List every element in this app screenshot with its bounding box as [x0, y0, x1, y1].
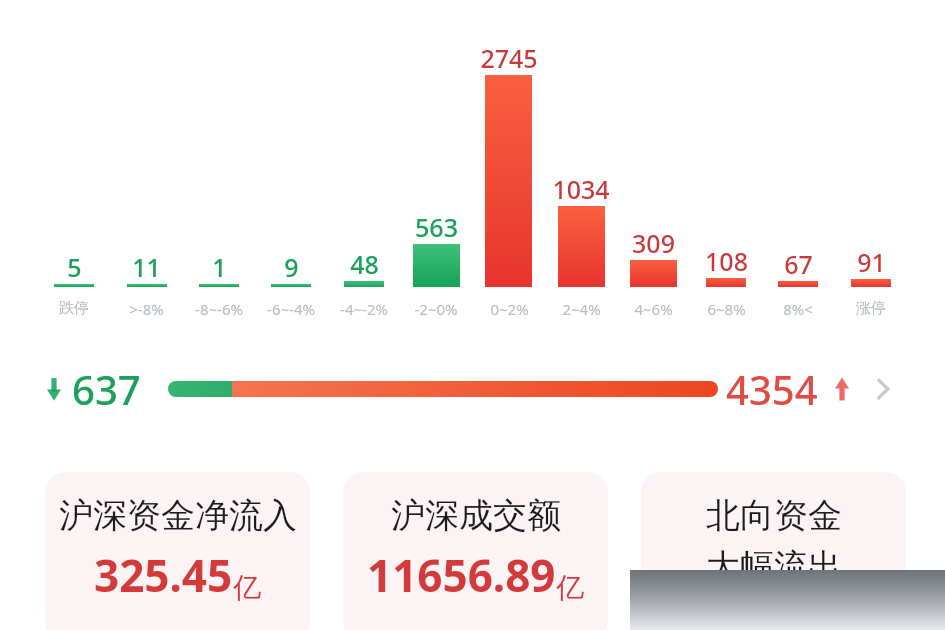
staticText: 5 — [67, 250, 82, 284]
staticText: 11 — [132, 250, 161, 284]
staticText: 67 — [784, 247, 813, 281]
staticText: 2~4% — [562, 299, 601, 319]
staticText: 2745 — [480, 41, 538, 75]
staticText: 8%< — [783, 299, 813, 319]
staticText: >-8% — [129, 299, 164, 319]
staticText: 563 — [415, 210, 458, 244]
staticText: 11656.89 — [367, 545, 556, 605]
staticText: 亿 — [556, 570, 584, 605]
staticText: 沪深资金净流入 — [59, 494, 297, 537]
staticText: 4354 — [726, 362, 818, 416]
staticText: 325.45 — [94, 545, 233, 605]
staticText: 跌停 — [59, 299, 89, 318]
staticText: 309 — [632, 226, 675, 260]
staticText: 0~2% — [490, 299, 529, 319]
button[interactable]: 沪深资金净流入 — [45, 472, 310, 630]
button[interactable]: 北向资金 — [641, 472, 906, 630]
staticText: 91 — [857, 245, 886, 279]
staticText: 涨停 — [856, 299, 886, 318]
button[interactable]: 沪深成交额 — [343, 472, 608, 630]
staticText: 1 — [212, 250, 227, 284]
other: Advancing — [832, 376, 852, 402]
staticText: 亿 — [233, 570, 261, 605]
other: More — [872, 374, 894, 404]
staticText: 4~6% — [634, 299, 673, 319]
staticText: -8~-6% — [195, 299, 243, 319]
staticText: 108 — [705, 244, 748, 278]
staticText: -6~-4% — [267, 299, 315, 319]
button[interactable]: Declining — [0, 358, 945, 420]
staticText: 9 — [284, 250, 299, 284]
staticText: 1034 — [552, 172, 610, 206]
other: Declining — [44, 376, 64, 402]
staticText: 637 — [72, 362, 141, 416]
staticText: -2~0% — [414, 299, 458, 319]
staticText: 6~8% — [707, 299, 746, 319]
staticText: 大幅流出 — [706, 545, 842, 588]
staticText: 48 — [350, 247, 379, 281]
staticText: 沪深成交额 — [391, 494, 561, 537]
staticText: -4~-2% — [340, 299, 388, 319]
staticText: 北向资金 — [706, 494, 842, 537]
